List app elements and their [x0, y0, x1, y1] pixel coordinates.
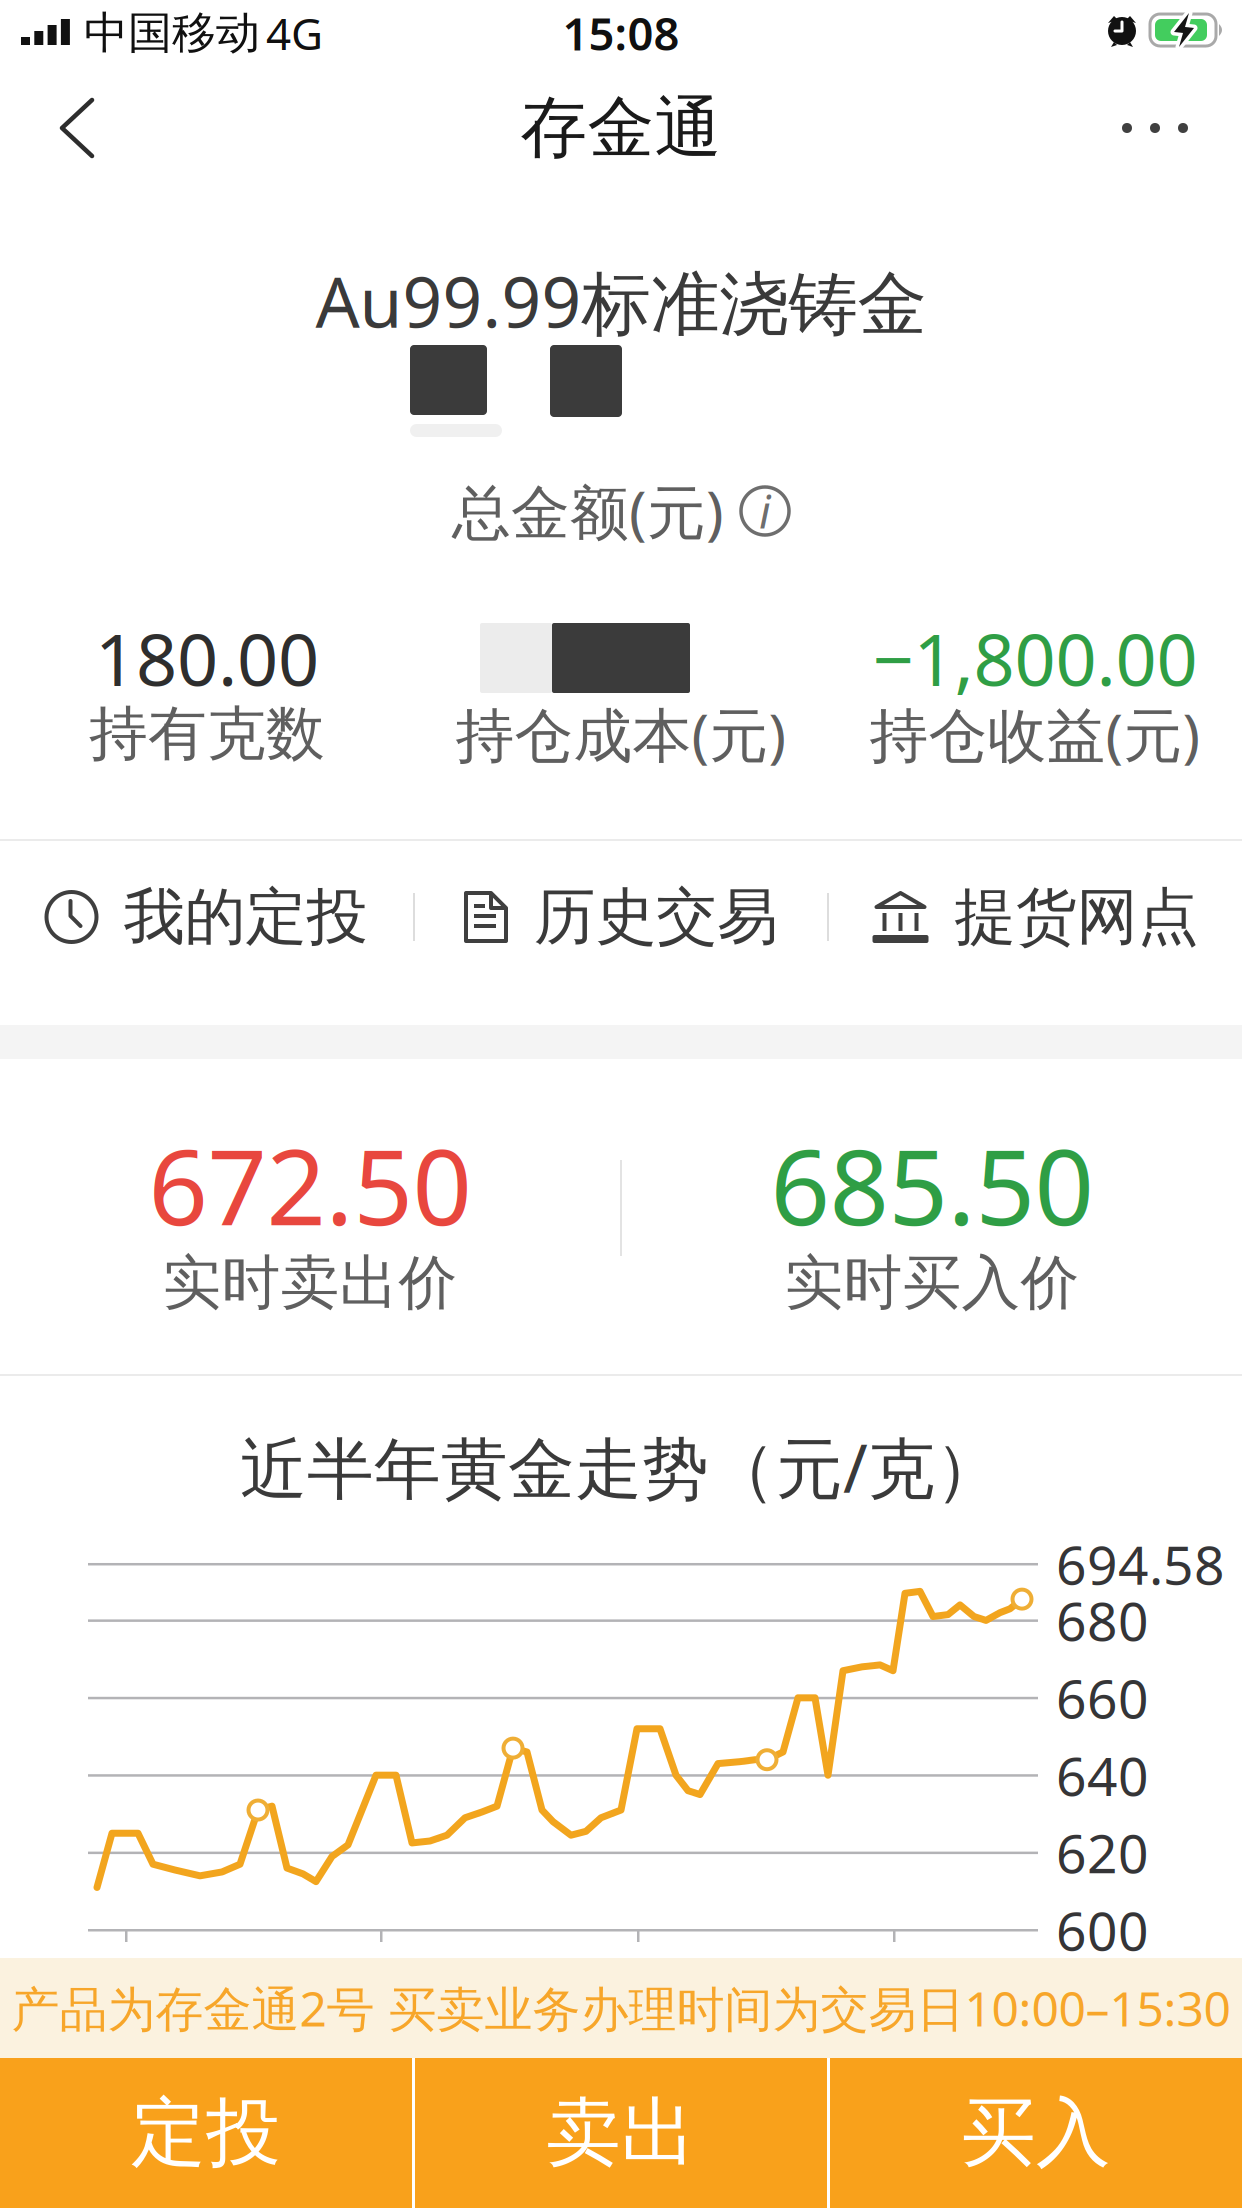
button[interactable]: 卖出: [415, 2058, 827, 2208]
button[interactable]: Info: [740, 486, 790, 536]
staticText: 产品为存金通2号 买卖业务办理时间为交易日10:00–15:30: [11, 1976, 1230, 2040]
staticText: 提货网点: [954, 879, 1198, 955]
staticText: 640: [1056, 1740, 1149, 1811]
staticText: 4G: [266, 4, 323, 62]
staticText: Au99.99标准浇铸金: [315, 255, 926, 347]
staticText: 600: [1056, 1895, 1149, 1965]
staticText: 持仓成本(元): [455, 695, 786, 773]
staticText: 685.50: [770, 1116, 1093, 1254]
staticText: 694.58: [1056, 1529, 1225, 1599]
staticText: 定投: [131, 2087, 281, 2179]
staticText: 持有克数: [89, 698, 325, 770]
staticText: 672.50: [148, 1116, 471, 1254]
staticText: 680: [1056, 1585, 1149, 1656]
staticText: 中国移动: [84, 6, 260, 60]
staticText: −1,800.00: [872, 610, 1197, 706]
button[interactable]: Back: [28, 94, 128, 162]
staticText: 620: [1056, 1817, 1149, 1888]
button[interactable]: 提货网点: [829, 825, 1242, 1009]
staticText: i: [759, 481, 771, 541]
button[interactable]: 历史交易: [415, 825, 827, 1009]
staticText: 实时买入价: [784, 1247, 1079, 1319]
staticText: 历史交易: [534, 879, 778, 955]
staticText: 存金通: [520, 87, 721, 169]
button[interactable]: More: [1090, 94, 1220, 162]
staticText: 我的定投: [123, 879, 367, 955]
staticText: 近半年黄金走势（元/克）: [240, 1423, 1002, 1511]
button[interactable]: 我的定投: [0, 825, 413, 1009]
button[interactable]: 定投: [0, 2058, 412, 2208]
staticText: 买入: [961, 2087, 1111, 2179]
staticText: 持仓收益(元): [869, 695, 1200, 773]
staticText: 180.00: [95, 610, 319, 706]
staticText: 660: [1056, 1662, 1149, 1733]
button[interactable]: 买入: [830, 2058, 1242, 2208]
staticText: 15:08: [562, 3, 679, 63]
staticText: 实时卖出价: [162, 1247, 457, 1319]
staticText: 总金额(元): [452, 472, 724, 550]
staticText: 卖出: [546, 2087, 696, 2179]
